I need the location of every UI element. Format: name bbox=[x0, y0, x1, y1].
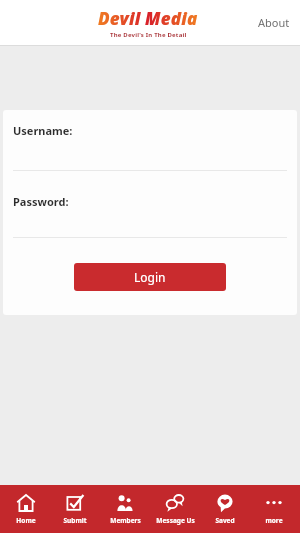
button[interactable]: Message Us bbox=[151, 485, 199, 533]
other: Saved bbox=[215, 493, 235, 513]
staticText: The Devil's In The Detail bbox=[110, 31, 187, 39]
staticText: Saved bbox=[215, 516, 235, 525]
button[interactable]: Submit bbox=[51, 485, 99, 533]
button[interactable]: Login bbox=[74, 263, 226, 291]
staticText: Username: bbox=[13, 123, 73, 138]
staticText: Devil Media bbox=[98, 7, 198, 30]
staticText: Password: bbox=[13, 194, 69, 209]
staticText: more bbox=[265, 516, 283, 525]
button[interactable]: Saved bbox=[201, 485, 249, 533]
button[interactable]: Password: bbox=[3, 193, 297, 237]
staticText: Home bbox=[16, 516, 36, 525]
other: Message Us bbox=[165, 493, 185, 513]
button[interactable]: Members bbox=[101, 485, 149, 533]
other: Home bbox=[16, 493, 36, 513]
staticText: Submit bbox=[63, 516, 87, 525]
other: Members bbox=[115, 493, 135, 513]
staticText: Login bbox=[134, 269, 166, 285]
button[interactable]: Username: bbox=[3, 122, 297, 170]
button[interactable]: more bbox=[250, 485, 298, 533]
staticText: Message Us bbox=[156, 516, 195, 525]
staticText: Members bbox=[110, 516, 141, 525]
button[interactable]: About bbox=[248, 7, 300, 38]
other: more bbox=[264, 493, 284, 513]
button[interactable]: Devil Media bbox=[98, 7, 198, 39]
other: Submit bbox=[65, 493, 85, 513]
button[interactable]: Home bbox=[2, 485, 50, 533]
staticText: About bbox=[258, 15, 290, 30]
